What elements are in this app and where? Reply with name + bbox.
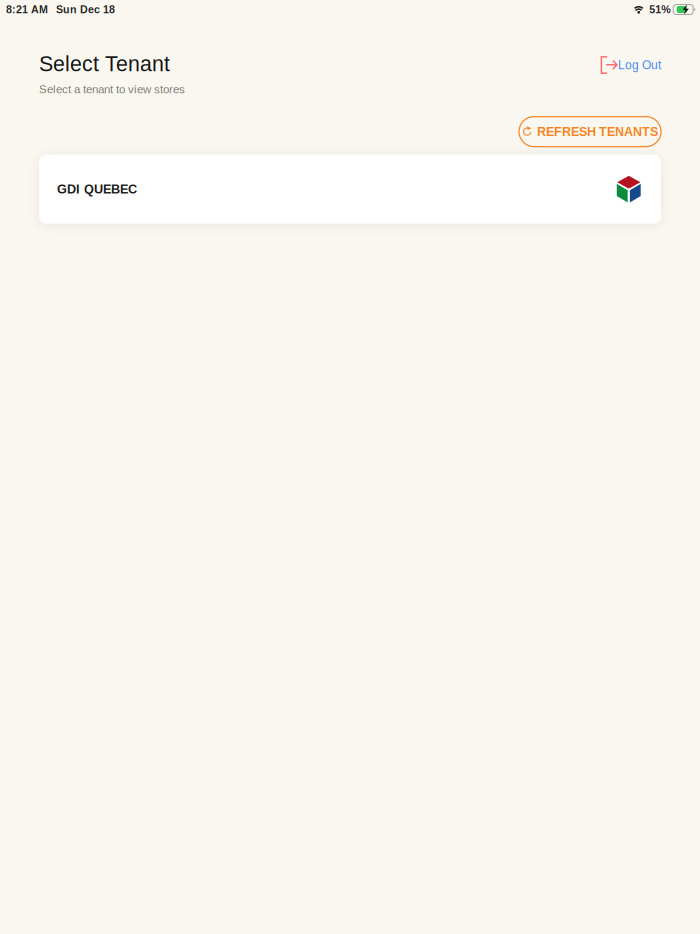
- staticText: Sun Dec 18: [56, 3, 115, 15]
- staticText: Log Out: [618, 58, 661, 72]
- staticText: Select a tenant to view stores: [39, 83, 185, 96]
- staticText: 8:21 AM: [6, 3, 48, 15]
- staticText: 51%: [649, 3, 670, 15]
- button[interactable]: REFRESH TENANTS: [519, 117, 661, 147]
- staticText: REFRESH TENANTS: [537, 125, 658, 139]
- button[interactable]: Log Out: [600, 52, 661, 74]
- staticText: Select Tenant: [39, 52, 170, 76]
- staticText: GDI QUEBEC: [57, 182, 137, 196]
- button[interactable]: GDI QUEBEC: [39, 155, 661, 224]
